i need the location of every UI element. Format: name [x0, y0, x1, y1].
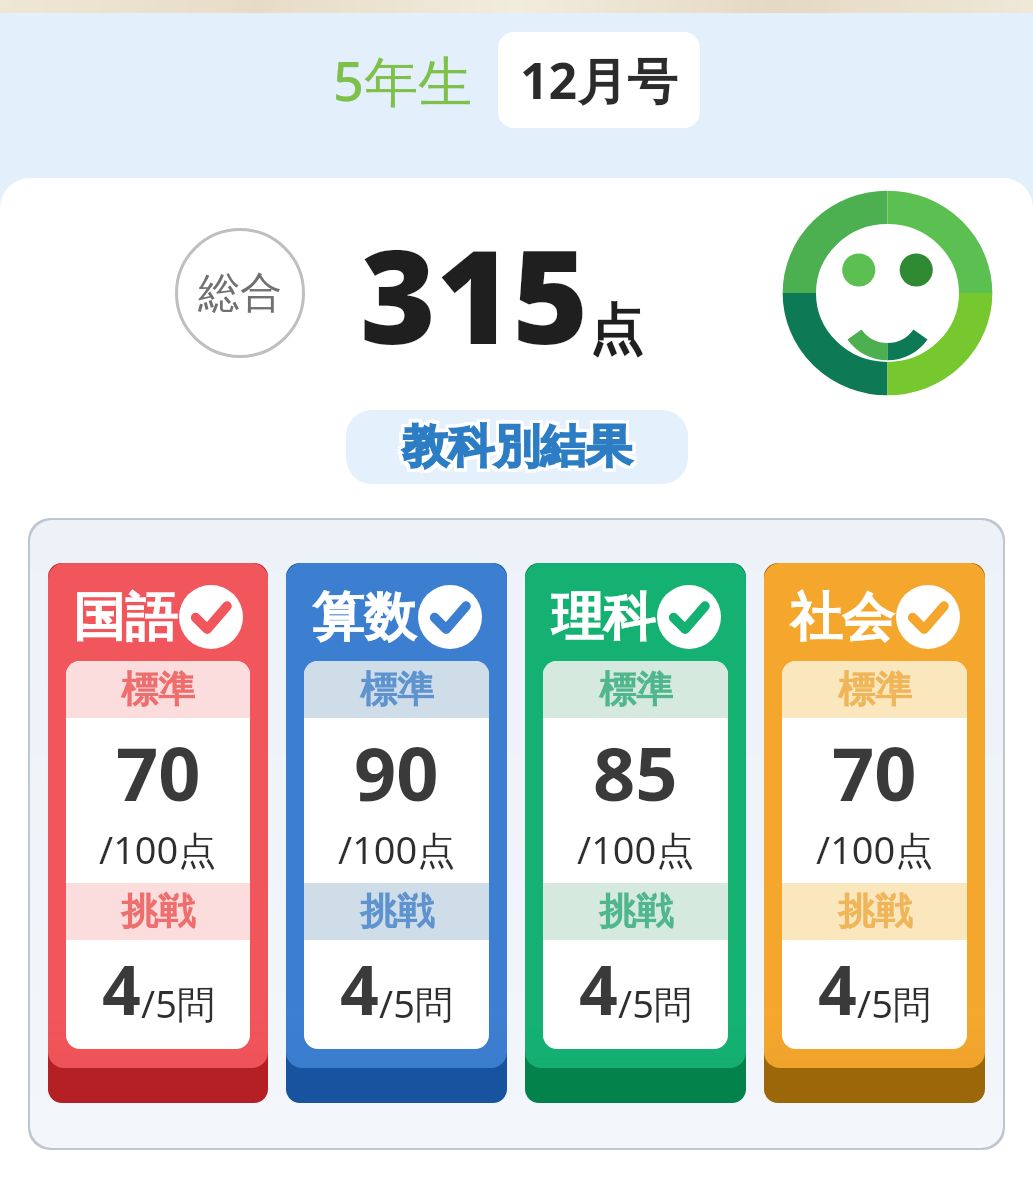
staticText: 教科別結果 [405, 421, 635, 479]
staticText: 挑戦 [838, 888, 912, 935]
other: Score smiley [770, 178, 1005, 408]
staticText: 85 [593, 722, 678, 823]
staticText: 教科別結果 [405, 418, 635, 476]
staticText: 理科 [551, 585, 655, 651]
staticText: 教科別結果 [399, 415, 629, 473]
staticText: 12月号 [520, 46, 678, 114]
staticText: /5問 [618, 977, 692, 1029]
staticText: 算数 [312, 585, 416, 651]
staticText: 315 [360, 205, 589, 382]
staticText: 教科別結果 [399, 418, 629, 476]
staticText: /5問 [379, 977, 453, 1029]
staticText: 国語 [73, 585, 177, 651]
staticText: 教科別結果 [399, 421, 629, 479]
staticText: /5問 [857, 977, 931, 1029]
button[interactable]: 12月号 [498, 32, 700, 128]
button[interactable]: 教科別結果 [346, 410, 688, 484]
staticText: 4 [818, 942, 857, 1035]
staticText: 70 [832, 722, 917, 823]
staticText: 90 [354, 722, 439, 823]
staticText: 社会 [790, 585, 894, 651]
staticText: 教科別結果 [402, 415, 632, 473]
staticText: 挑戦 [121, 888, 195, 935]
staticText: 4 [579, 942, 618, 1035]
staticText: 教科別結果 [402, 421, 632, 479]
staticText: 教科別結果 [402, 418, 632, 476]
staticText: 挑戦 [599, 888, 673, 935]
staticText: 教科別結果 [405, 415, 635, 473]
staticText: 標準 [838, 666, 912, 713]
staticText: /5問 [141, 977, 215, 1029]
button[interactable]: 算数 [286, 563, 507, 1103]
staticText: 4 [102, 942, 141, 1035]
button[interactable]: 理科 [525, 563, 746, 1103]
staticText: /100点 [99, 823, 217, 875]
staticText: 標準 [599, 666, 673, 713]
staticText: /100点 [338, 823, 456, 875]
staticText: 標準 [360, 666, 434, 713]
staticText: 総合 [198, 267, 282, 320]
staticText: 挑戦 [360, 888, 434, 935]
staticText: 点 [589, 296, 643, 364]
staticText: 70 [116, 722, 201, 823]
staticText: 標準 [121, 666, 195, 713]
staticText: 4 [340, 942, 379, 1035]
staticText: /100点 [816, 823, 934, 875]
staticText: /100点 [577, 823, 695, 875]
button[interactable]: 国語 [48, 563, 268, 1103]
button[interactable]: 社会 [764, 563, 985, 1103]
staticText: 5年生 [333, 43, 472, 117]
